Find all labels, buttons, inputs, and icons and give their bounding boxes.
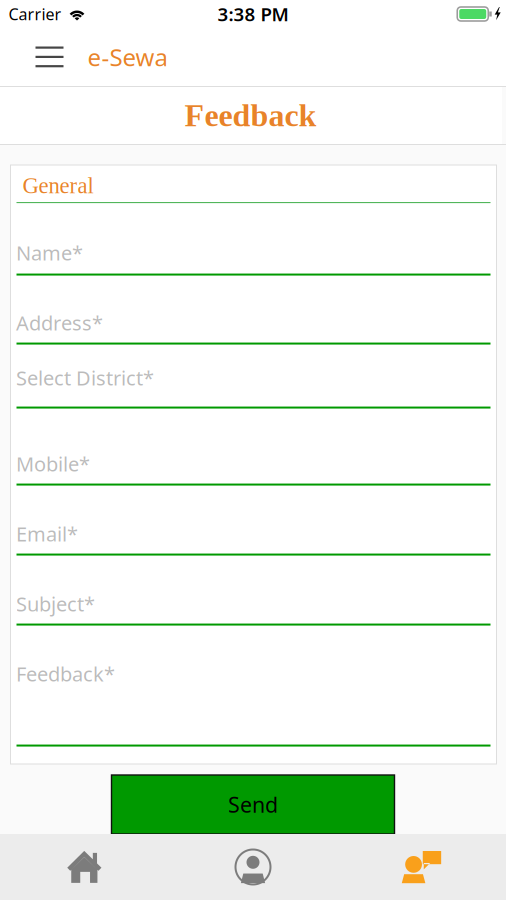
button[interactable]: Feedback [337,834,506,900]
staticText: 3:38 PM [217,2,288,26]
staticText: e-Sewa [87,41,167,73]
button[interactable]: Menu [23,28,75,86]
button[interactable]: Send [111,775,394,834]
staticText: Send [228,790,278,819]
button[interactable]: Profile [169,834,337,900]
button[interactable]: Home [0,834,169,900]
staticText: General [22,173,93,198]
staticText: Address* [16,309,103,336]
staticText: Email* [16,520,78,547]
staticText: Feedback* [16,660,115,687]
staticText: Feedback [184,98,316,133]
staticText: Mobile* [16,450,90,477]
staticText: Subject* [16,590,95,617]
staticText: Select District* [16,364,154,391]
staticText: Name* [16,239,83,266]
staticText: Carrier [8,3,61,25]
